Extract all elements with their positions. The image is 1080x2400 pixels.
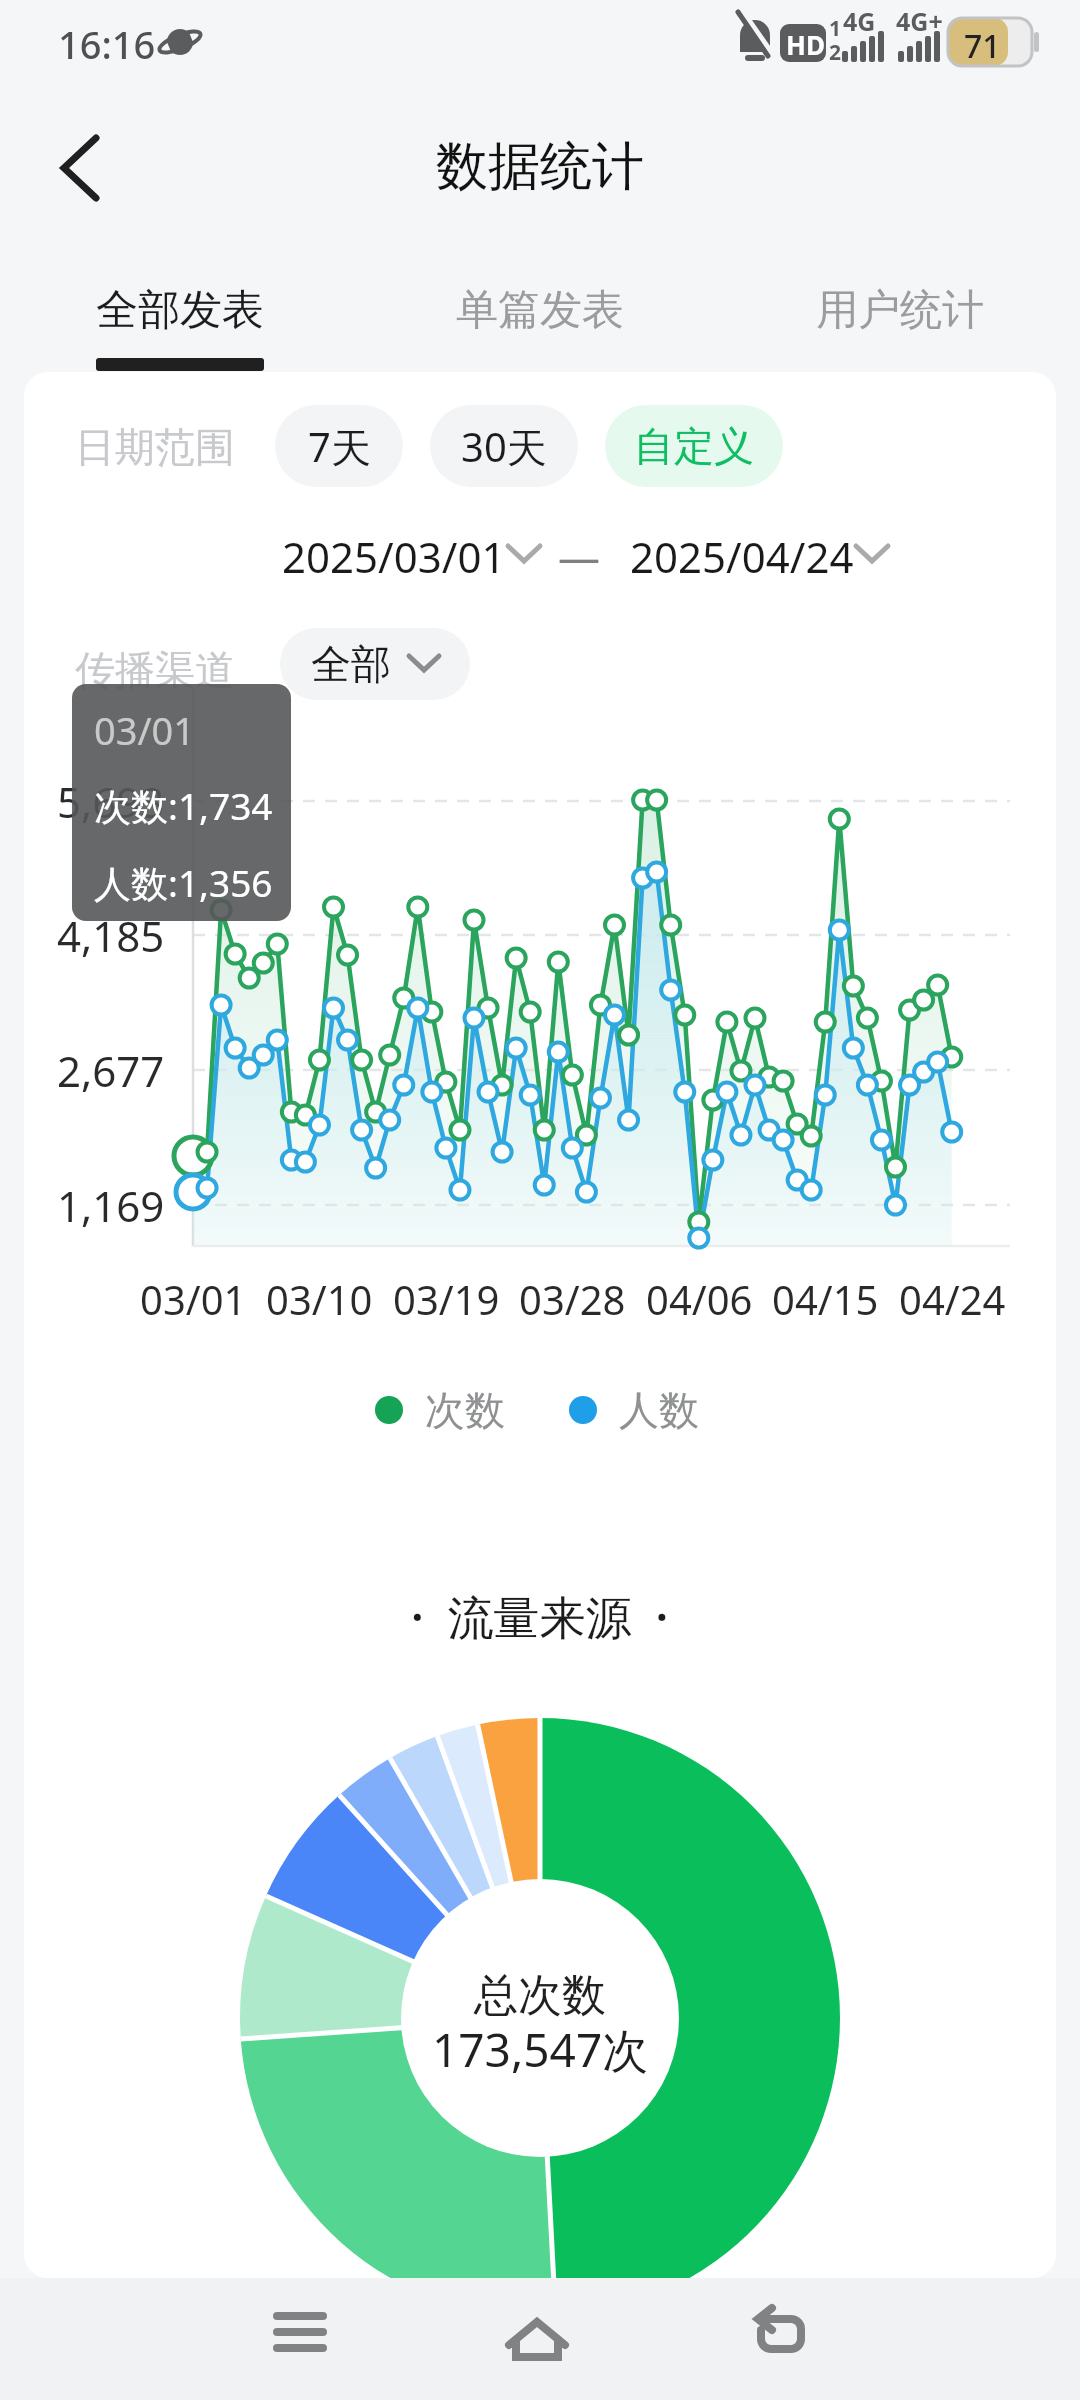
staticText: 4G+: [896, 4, 943, 38]
staticText: 次数: [425, 1385, 505, 1435]
staticText: 4G: [843, 4, 876, 38]
staticText: 173,547次: [432, 2018, 649, 2081]
staticText: 2,677: [57, 1042, 165, 1099]
staticText: 单篇发表: [456, 284, 624, 337]
staticText: 全部: [311, 639, 391, 689]
staticText: 03/28: [519, 1272, 626, 1326]
staticText: 04/24: [899, 1272, 1006, 1326]
staticText: 2: [829, 38, 842, 67]
staticText: 人数: [619, 1385, 699, 1435]
button[interactable]: 单篇发表: [456, 284, 624, 337]
button[interactable]: 全部发表: [96, 284, 264, 337]
staticText: 1: [829, 14, 842, 43]
staticText: —: [558, 528, 601, 585]
button[interactable]: 用户统计: [816, 284, 984, 337]
button[interactable]: 自定义: [605, 405, 783, 487]
button[interactable]: 7天: [275, 405, 403, 487]
staticText: 1,169: [57, 1177, 165, 1234]
staticText: 04/15: [772, 1272, 879, 1326]
staticText: 03/10: [266, 1272, 373, 1326]
button[interactable]: [250, 2298, 350, 2378]
staticText: 03/01: [94, 704, 196, 756]
button[interactable]: 30天: [430, 405, 578, 487]
staticText: 人数:1,356: [94, 857, 273, 908]
staticText: · 流量来源 ·: [411, 1585, 669, 1648]
staticText: 全部发表: [96, 284, 264, 337]
staticText: 数据统计: [436, 134, 644, 200]
button[interactable]: [730, 2298, 830, 2378]
staticText: 03/01: [140, 1272, 247, 1326]
staticText: 04/06: [646, 1272, 753, 1326]
staticText: 总次数: [474, 1968, 606, 2023]
staticText: 30天: [461, 419, 547, 474]
staticText: 03/19: [393, 1272, 500, 1326]
staticText: 用户统计: [816, 284, 984, 337]
staticText: 5,693: [57, 773, 165, 830]
staticText: 传播渠道: [75, 645, 235, 695]
staticText: 16:16: [58, 18, 156, 70]
staticText: 7天: [308, 419, 371, 474]
staticText: 自定义: [634, 421, 754, 471]
button[interactable]: 2025/04/24: [630, 528, 854, 585]
staticText: 次数:1,734: [94, 780, 273, 831]
button[interactable]: 全部: [280, 628, 470, 700]
button[interactable]: 2025/03/01: [282, 528, 506, 585]
button[interactable]: [490, 2298, 590, 2378]
staticText: HD: [786, 27, 825, 62]
staticText: 4,185: [57, 907, 165, 964]
staticText: 日期范围: [75, 422, 235, 472]
staticText: 71: [964, 24, 1001, 68]
button[interactable]: [40, 120, 130, 220]
